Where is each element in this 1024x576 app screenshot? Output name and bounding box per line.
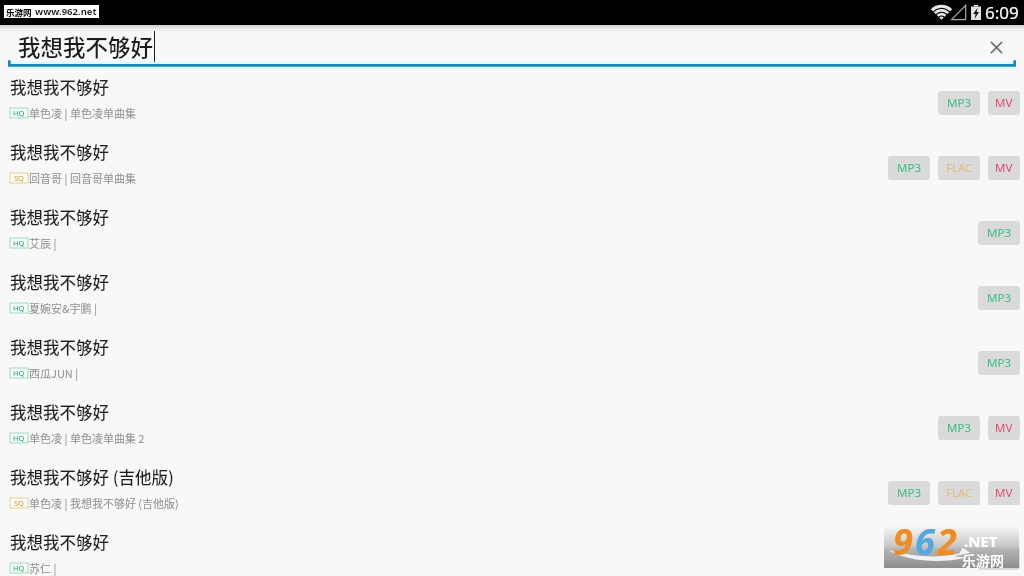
button[interactable]: MV <box>988 481 1020 505</box>
staticText: www.962.net <box>35 5 97 18</box>
staticText: 乐游网 <box>6 6 32 18</box>
button[interactable]: MP3 <box>978 286 1020 310</box>
button[interactable]: 我想我不够好 <box>0 72 1024 137</box>
staticText: MV <box>995 95 1013 111</box>
button[interactable]: MV <box>988 156 1020 180</box>
staticText: 我想我不够好 <box>10 270 109 294</box>
staticText: FLAC <box>946 160 973 176</box>
staticText: SQ <box>14 498 24 508</box>
button[interactable]: MP3 <box>888 481 930 505</box>
staticText: MP3 <box>987 355 1011 371</box>
staticText: MV <box>995 485 1013 501</box>
button[interactable]: MP3 <box>978 546 1020 570</box>
button[interactable]: FLAC <box>938 156 980 180</box>
staticText: MP3 <box>947 95 971 111</box>
staticText: FLAC <box>946 485 973 501</box>
button[interactable]: 我想我不够好 <box>0 267 1024 332</box>
button[interactable]: 我想我不够好 <box>0 202 1024 267</box>
staticText: HQ <box>13 238 25 248</box>
staticText: 艾辰 | <box>29 235 57 251</box>
staticText: SQ <box>14 173 24 183</box>
staticText: MP3 <box>897 485 921 501</box>
staticText: 回音哥 | 回音哥单曲集 <box>29 170 136 186</box>
staticText: HQ <box>13 563 25 573</box>
button[interactable]: 我想我不够好 <box>0 332 1024 397</box>
button[interactable]: MP3 <box>938 91 980 115</box>
staticText: 我想我不够好 <box>10 530 109 554</box>
staticText: 单色凌 | 单色凌单曲集 <box>29 105 136 121</box>
button[interactable]: 我想我不够好 (吉他版) <box>0 462 1024 527</box>
staticText: HQ <box>13 433 25 443</box>
button[interactable]: 我想我不够好 <box>0 137 1024 202</box>
staticText: HQ <box>13 368 25 378</box>
staticText: MV <box>995 160 1013 176</box>
staticText: MP3 <box>987 550 1011 566</box>
staticText: 我想我不够好 <box>10 335 109 359</box>
staticText: MP3 <box>897 160 921 176</box>
staticText: 单色凌 | 单色凌单曲集 2 <box>29 430 145 446</box>
staticText: 我想我不够好 <box>10 400 109 424</box>
button[interactable]: 我想我不够好 <box>8 27 973 66</box>
staticText: 乐游网 <box>962 550 1004 570</box>
button[interactable]: MV <box>988 416 1020 440</box>
staticText: 我想我不够好 <box>10 140 109 164</box>
staticText: 单色凌 | 我想我不够好 (吉他版) <box>29 495 179 511</box>
staticText: 苏仁 | <box>29 560 57 576</box>
staticText: 我想我不够好 <box>10 75 109 99</box>
button[interactable]: Clear search <box>981 33 1011 62</box>
staticText: MP3 <box>987 225 1011 241</box>
staticText: MP3 <box>987 290 1011 306</box>
button[interactable]: MP3 <box>978 351 1020 375</box>
staticText: MV <box>995 420 1013 436</box>
staticText: 2 <box>937 517 957 558</box>
staticText: 9 <box>893 517 915 558</box>
staticText: 西瓜JUN | <box>29 365 79 381</box>
staticText: .NET <box>964 531 998 551</box>
button[interactable]: FLAC <box>938 481 980 505</box>
button[interactable]: MP3 <box>978 221 1020 245</box>
button[interactable]: MV <box>988 91 1020 115</box>
staticText: 6 <box>915 517 937 558</box>
button[interactable]: 我想我不够好 <box>0 397 1024 462</box>
button[interactable]: 我想我不够好 <box>0 527 1024 576</box>
staticText: MP3 <box>947 420 971 436</box>
staticText: 我想我不够好 (吉他版) <box>10 465 174 489</box>
staticText: HQ <box>13 108 25 118</box>
button[interactable]: MP3 <box>888 156 930 180</box>
staticText: 夏婉安&宇鹏 | <box>29 300 97 316</box>
staticText: 我想我不够好 <box>10 205 109 229</box>
staticText: HQ <box>13 303 25 313</box>
button[interactable]: MP3 <box>938 416 980 440</box>
staticText: 我想我不够好 <box>18 30 154 63</box>
staticText: 6:09 <box>985 1 1019 24</box>
